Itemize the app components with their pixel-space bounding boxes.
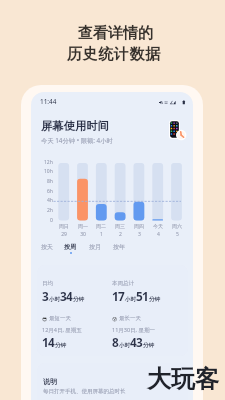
staticText: 周二 [96,223,106,229]
staticText: 30 [80,231,86,238]
staticText: 51 [136,288,149,304]
staticText: 周四 [134,223,144,229]
staticText: 😰 [112,316,118,322]
staticText: 周一 [78,223,88,229]
staticText: 小时 [49,296,60,303]
staticText: 今天 14分钟 • 限额: 4小时 [41,136,113,145]
staticText: 周六 [172,223,182,229]
staticText: 屏幕使用时间 [41,119,109,133]
staticText: 按月 [89,243,102,251]
staticText: 分钟 [55,342,66,349]
staticText: 8h [47,178,53,185]
staticText: 5 [176,231,179,238]
staticText: 最长一天 [119,315,141,322]
staticText: 最短一天 [49,315,71,322]
staticText: 43 [130,334,143,350]
staticText: 2 [119,231,122,238]
staticText: 日均 [42,280,53,287]
staticText: 11:44 [40,97,57,106]
staticText: 2h [47,207,53,214]
staticText: 历史统计数据 [67,45,161,64]
button[interactable]: 按周 [58,240,82,256]
staticText: 12h [44,159,53,166]
staticText: 按天 [41,243,54,251]
staticText: 按周 [64,243,77,251]
staticText: 😎 [42,316,48,322]
staticText: 大玩客 [147,364,219,394]
staticText: 周日 [59,223,69,229]
staticText: 查看详情的 [78,24,153,43]
staticText: 11月30日, 星期一 [112,326,155,334]
staticText: 分钟 [149,296,160,303]
staticText: 12月4日, 星期五 [42,326,82,334]
staticText: 分钟 [143,342,154,349]
staticText: 6h [47,188,53,195]
staticText: 周三 [115,223,125,229]
staticText: 34 [60,288,73,304]
staticText: 小时 [125,296,136,303]
staticText: 小时 [119,342,130,349]
button[interactable]: 按天 [35,240,59,256]
staticText: 29 [61,231,67,238]
button[interactable]: 按月 [83,240,107,256]
staticText: 17 [112,288,125,304]
staticText: 按年 [113,243,126,251]
other: Status icons [159,100,186,105]
staticText: 3 [42,288,49,304]
staticText: 说明 [43,377,57,386]
staticText: 4h [47,197,53,204]
staticText: 本周总计 [112,280,134,287]
staticText: 4 [157,231,160,238]
staticText: 14 [42,334,55,350]
staticText: 3 [138,231,141,238]
staticText: 今天 [153,223,163,229]
staticText: 0 [50,217,53,224]
staticText: 分钟 [73,296,84,303]
staticText: 10h [44,168,53,175]
staticText: 1 [100,231,103,238]
staticText: 8 [112,334,119,350]
staticText: 每日打开手机、使用屏幕的总时长 [43,388,126,395]
button[interactable]: 按年 [107,240,131,256]
